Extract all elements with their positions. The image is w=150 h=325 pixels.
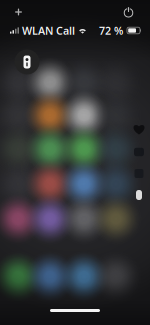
button[interactable]: Comment (133, 147, 145, 157)
button[interactable]: Like (133, 124, 145, 135)
button[interactable]: Flashlight (13, 48, 40, 75)
button[interactable]: Save (134, 169, 143, 178)
staticText: WLAN Call (22, 23, 75, 38)
staticText: 72 % (99, 23, 123, 38)
button[interactable]: Share (136, 190, 142, 200)
